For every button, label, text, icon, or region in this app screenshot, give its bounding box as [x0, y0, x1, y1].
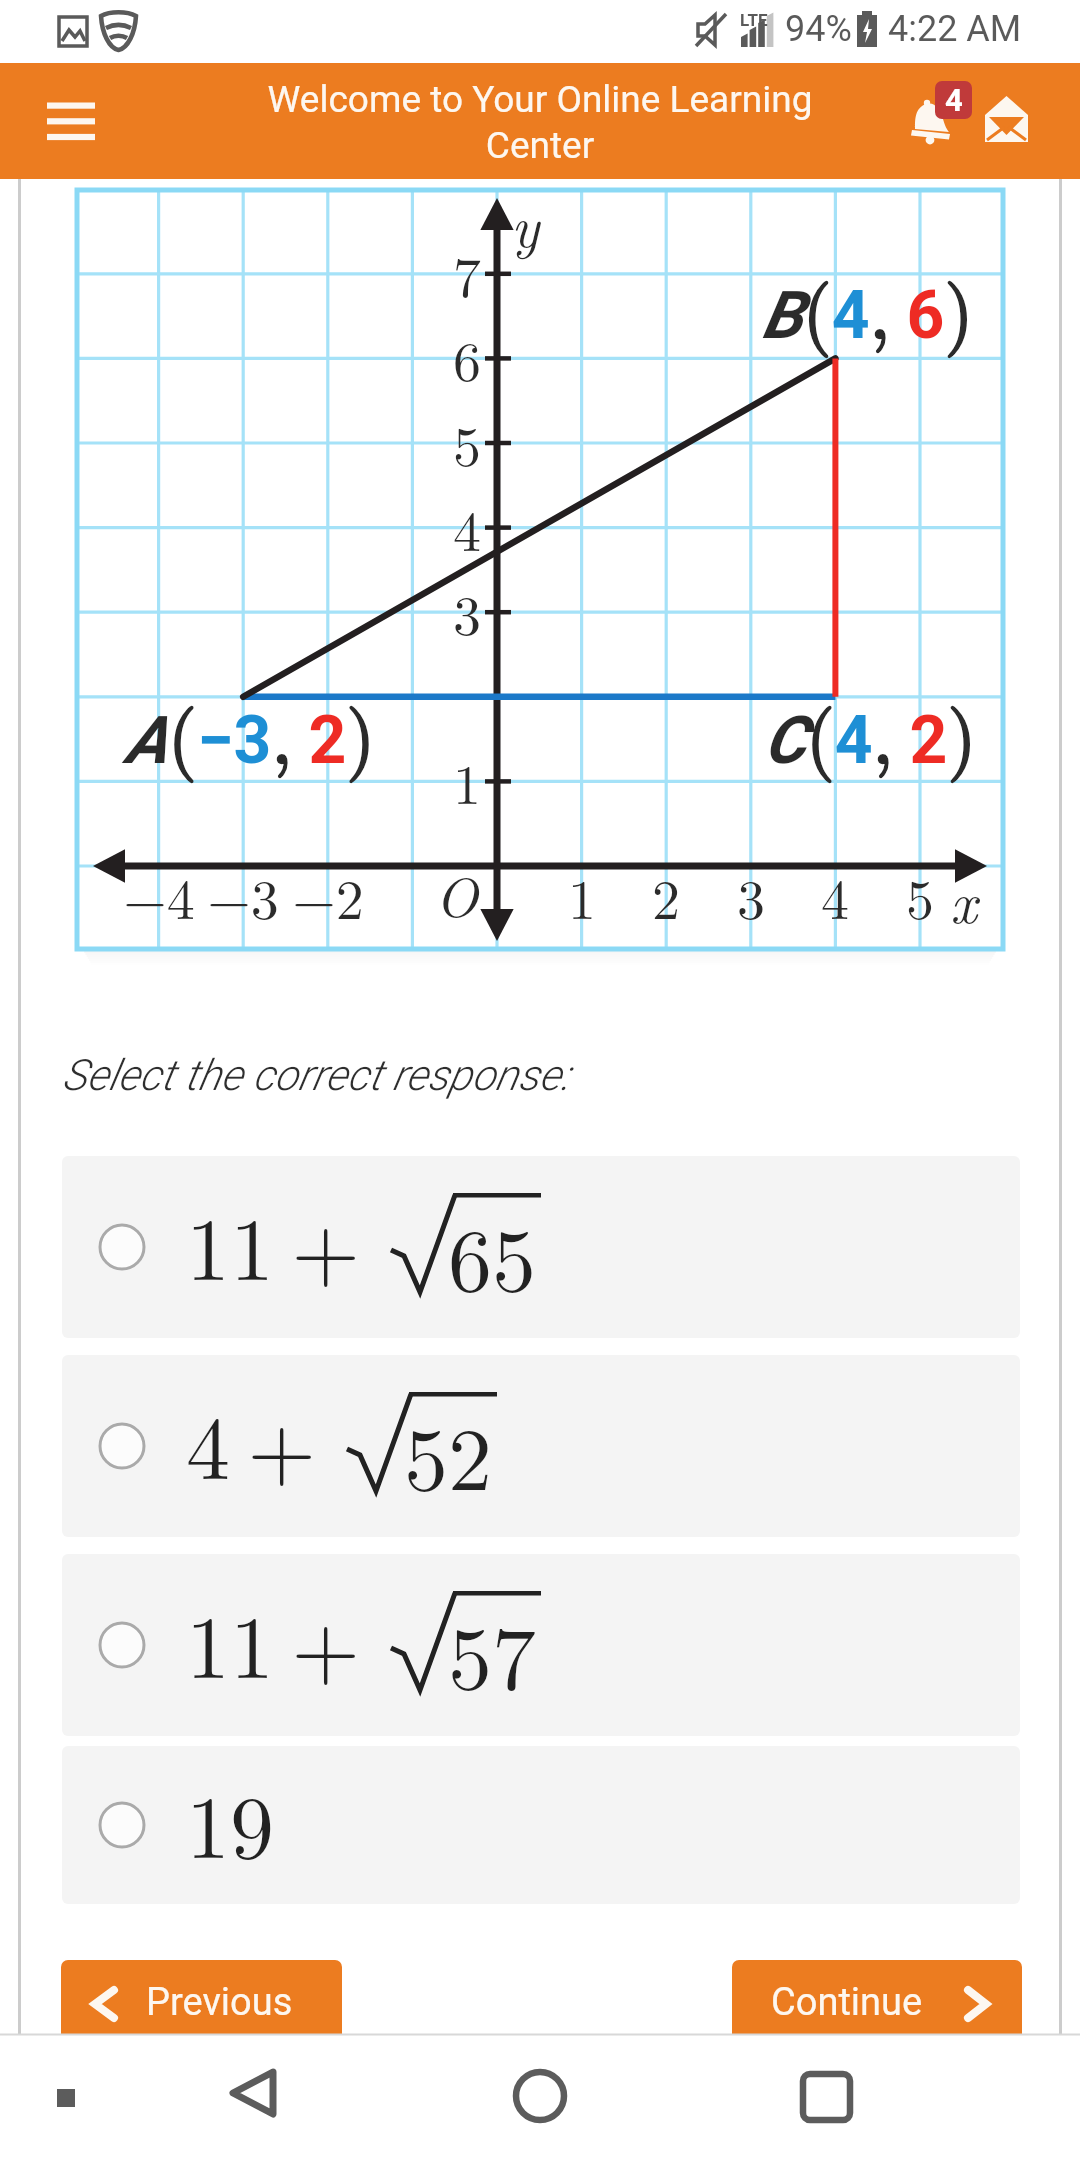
- staticText: 5: [451, 403, 481, 482]
- staticText: 4 +: [186, 1380, 317, 1505]
- button[interactable]: Recent apps: [795, 2066, 859, 2130]
- button[interactable]: Home: [508, 2064, 572, 2128]
- staticText: 4: [945, 82, 963, 118]
- staticText: −3: [198, 856, 288, 935]
- staticText: −2: [283, 856, 373, 935]
- staticText: Select the correct response:: [62, 1050, 570, 1100]
- staticText: Continue: [771, 1980, 923, 2025]
- staticText: 1: [537, 856, 627, 935]
- staticText: A(−3, 2): [125, 680, 376, 785]
- button[interactable]: 11 +: [62, 1554, 1020, 1736]
- button[interactable]: Notifications, 4 new: [900, 81, 976, 165]
- staticText: 4: [451, 488, 481, 567]
- staticText: O: [435, 854, 478, 933]
- staticText: 3: [706, 856, 796, 935]
- staticText: x: [950, 858, 977, 940]
- button[interactable]: Open navigation menu: [30, 83, 112, 159]
- staticText: 57: [448, 1590, 537, 1694]
- staticText: −4: [114, 856, 204, 935]
- button[interactable]: Continue: [732, 1960, 1022, 2046]
- button[interactable]: Messages: [975, 89, 1039, 153]
- staticText: 4:22 AM: [888, 8, 1022, 50]
- staticText: B(4, 6): [762, 255, 974, 360]
- staticText: 3: [451, 572, 481, 651]
- staticText: 94%: [785, 8, 852, 50]
- staticText: C(4, 2): [764, 680, 977, 785]
- button[interactable]: 11 +: [62, 1156, 1020, 1338]
- staticText: 11 +: [186, 1181, 361, 1306]
- staticText: 19: [186, 1759, 275, 1884]
- staticText: 5: [875, 856, 965, 935]
- staticText: 6: [451, 318, 481, 397]
- button[interactable]: Back: [224, 2066, 282, 2120]
- staticText: 2: [621, 856, 711, 935]
- staticText: Previous: [146, 1980, 293, 2025]
- staticText: 4: [790, 856, 880, 935]
- staticText: y: [511, 182, 540, 264]
- button[interactable]: Menu: [56, 2088, 76, 2108]
- button[interactable]: 4 +: [62, 1355, 1020, 1537]
- button[interactable]: Previous: [61, 1960, 342, 2046]
- staticText: 65: [448, 1192, 537, 1296]
- staticText: 11 +: [186, 1579, 361, 1704]
- staticText: LTE: [740, 10, 768, 30]
- staticText: 52: [404, 1391, 493, 1495]
- button[interactable]: 19: [62, 1746, 1020, 1904]
- staticText: 1: [451, 741, 481, 820]
- staticText: 7: [451, 234, 481, 313]
- staticText: Welcome to Your Online Learning Center: [253, 78, 827, 167]
